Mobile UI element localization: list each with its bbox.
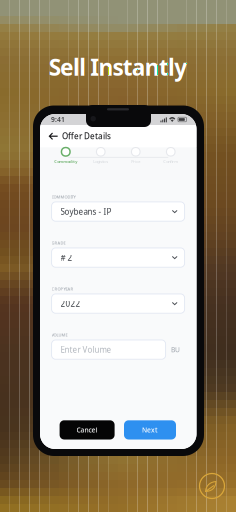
button[interactable]: Soybeans - IP [52, 202, 185, 221]
button[interactable]: # 2 [52, 248, 185, 267]
staticText: Confirm [163, 159, 178, 164]
staticText: CROP YEAR [52, 286, 74, 291]
staticText: Enter Volume [61, 344, 112, 355]
staticText: # 2 [61, 252, 73, 263]
button[interactable]: Cancel [60, 420, 115, 439]
staticText: Offer Details [62, 131, 111, 141]
staticText: Logistics [93, 159, 108, 164]
staticText: 2022 [61, 298, 81, 309]
button[interactable]: Back [45, 125, 62, 147]
staticText: Price [131, 159, 140, 164]
staticText: Next [142, 425, 158, 434]
button[interactable]: Enter Volume [52, 340, 166, 359]
staticText: BU [171, 345, 180, 354]
staticText: Commodity [54, 159, 77, 164]
staticText: VOLUME [52, 332, 68, 337]
staticText: COMMODITY [52, 194, 76, 199]
staticText: Sell Instantly [49, 52, 187, 82]
button[interactable]: Next [124, 420, 176, 439]
button[interactable]: 2022 [52, 294, 185, 313]
staticText: Soybeans - IP [61, 206, 112, 217]
staticText: Cancel [77, 425, 98, 434]
staticText: GRADE [52, 240, 66, 245]
staticText: 9:41 [51, 115, 65, 124]
